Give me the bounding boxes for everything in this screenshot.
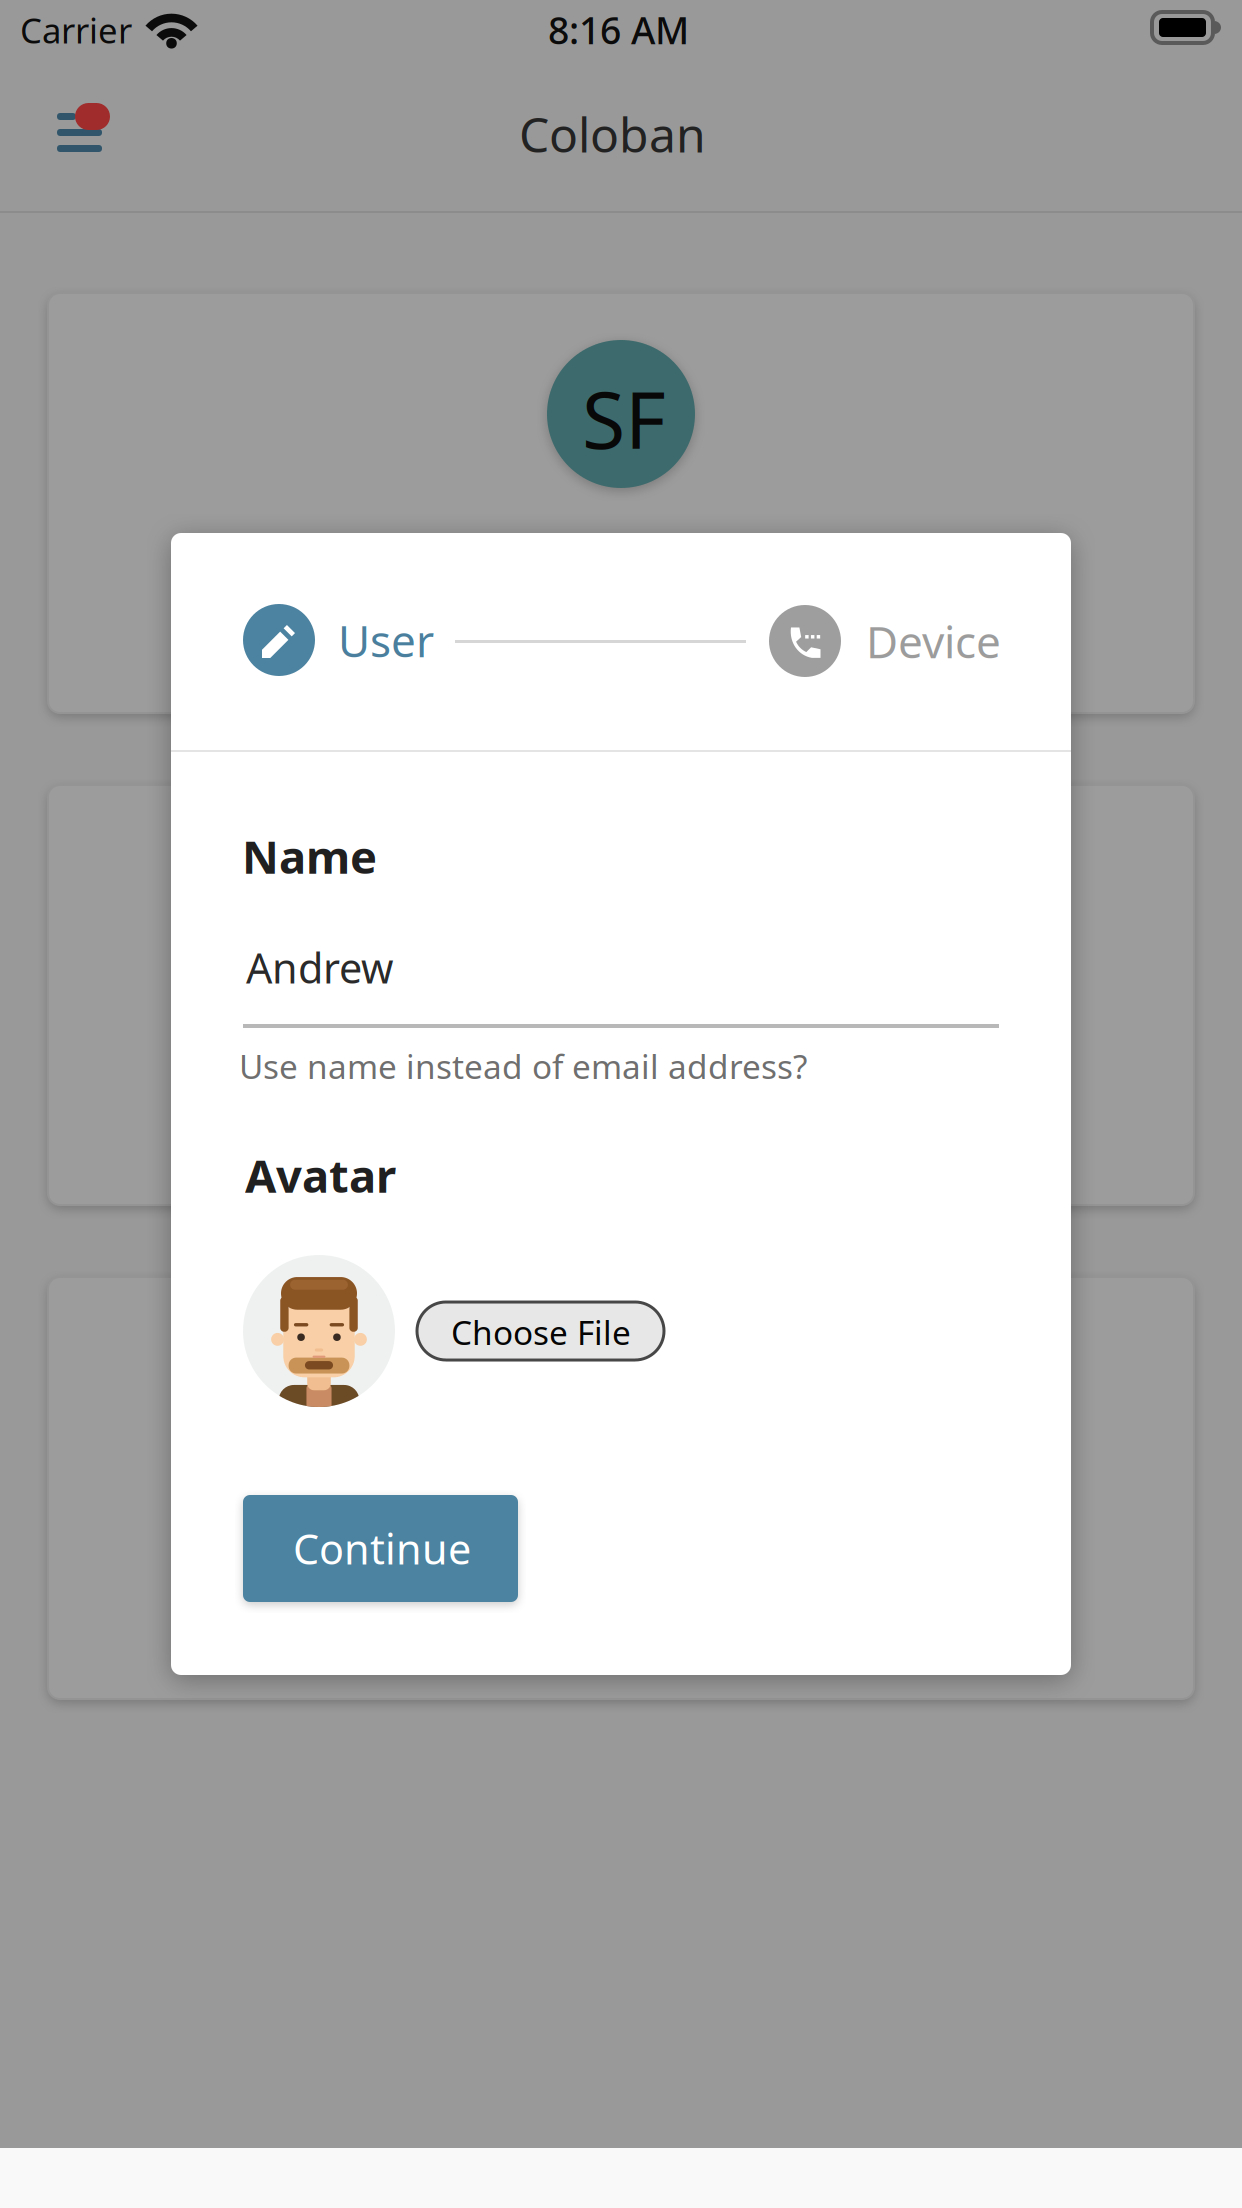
staticText: Coloban: [519, 102, 706, 166]
staticText: User: [338, 611, 434, 669]
staticText: Continue: [293, 1521, 471, 1576]
staticText: Carrier: [20, 7, 132, 53]
button[interactable]: Device: [769, 605, 999, 677]
staticText: Andrew: [246, 940, 393, 995]
staticText: Device: [866, 612, 1001, 670]
staticText: Choose File: [451, 1310, 631, 1354]
button[interactable]: Continue: [243, 1495, 518, 1602]
staticText: SF: [582, 366, 666, 470]
button[interactable]: Choose File: [417, 1302, 664, 1360]
staticText: Avatar: [245, 1145, 396, 1205]
staticText: Name: [242, 826, 377, 886]
staticText: 8:16 AM: [548, 5, 689, 55]
button[interactable]: Menu: [0, 0, 163, 208]
staticText: Use name instead of email address?: [239, 1044, 807, 1088]
button[interactable]: User: [243, 604, 433, 676]
